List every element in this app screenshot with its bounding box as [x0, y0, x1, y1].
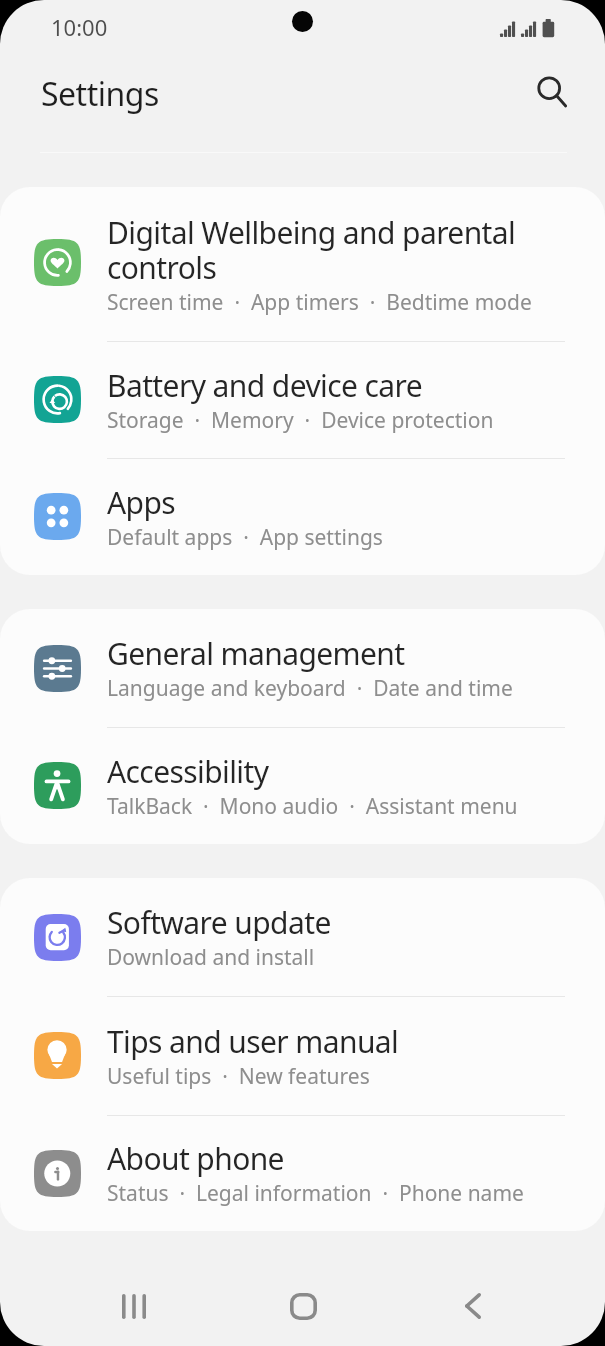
staticText: Status · Legal information · Phone name: [107, 1179, 524, 1208]
staticText: Language and keyboard · Date and time: [107, 674, 513, 703]
staticText: Screen time · App timers · Bedtime mode: [107, 288, 532, 317]
button[interactable]: Accessibility: [0, 727, 605, 844]
staticText: Software update: [107, 902, 331, 943]
staticText: About phone: [107, 1138, 284, 1179]
button[interactable]: Search: [523, 63, 580, 120]
button[interactable]: Recents: [86, 1270, 182, 1342]
button[interactable]: Battery and device care: [0, 341, 605, 458]
button[interactable]: About phone: [0, 1115, 605, 1231]
staticText: Accessibility: [107, 751, 269, 792]
button[interactable]: Home: [255, 1270, 351, 1342]
staticText: Battery and device care: [107, 365, 423, 406]
button[interactable]: Apps: [0, 458, 605, 575]
staticText: General management: [107, 633, 405, 674]
button[interactable]: Digital Wellbeing and parental controls: [0, 187, 605, 341]
staticText: Download and install: [107, 943, 315, 972]
button[interactable]: Tips and user manual: [0, 996, 605, 1115]
staticText: Digital Wellbeing and parental controls: [107, 212, 569, 288]
staticText: Default apps · App settings: [107, 523, 383, 552]
staticText: Storage · Memory · Device protection: [107, 406, 494, 435]
button[interactable]: General management: [0, 609, 605, 727]
staticText: Settings: [41, 72, 159, 116]
staticText: 10:00: [51, 12, 108, 42]
button[interactable]: Back: [425, 1270, 521, 1342]
staticText: Useful tips · New features: [107, 1062, 370, 1091]
staticText: TalkBack · Mono audio · Assistant menu: [107, 792, 518, 821]
button[interactable]: Software update: [0, 878, 605, 996]
staticText: Apps: [107, 482, 176, 523]
staticText: Tips and user manual: [107, 1021, 399, 1062]
